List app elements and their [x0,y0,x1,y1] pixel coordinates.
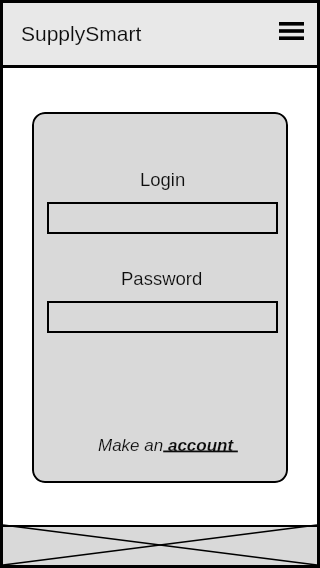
staticText: SupplySmart [21,22,142,45]
staticText: Login [140,169,186,190]
button[interactable]: SupplySmart [3,3,317,65]
button[interactable]: Image placeholder [3,525,317,565]
button[interactable]: Open navigation menu [279,22,304,40]
button[interactable]: Login field [47,202,278,234]
button[interactable]: Make an account [98,436,238,455]
button[interactable]: Password field [47,301,278,333]
staticText: Password [121,268,203,289]
